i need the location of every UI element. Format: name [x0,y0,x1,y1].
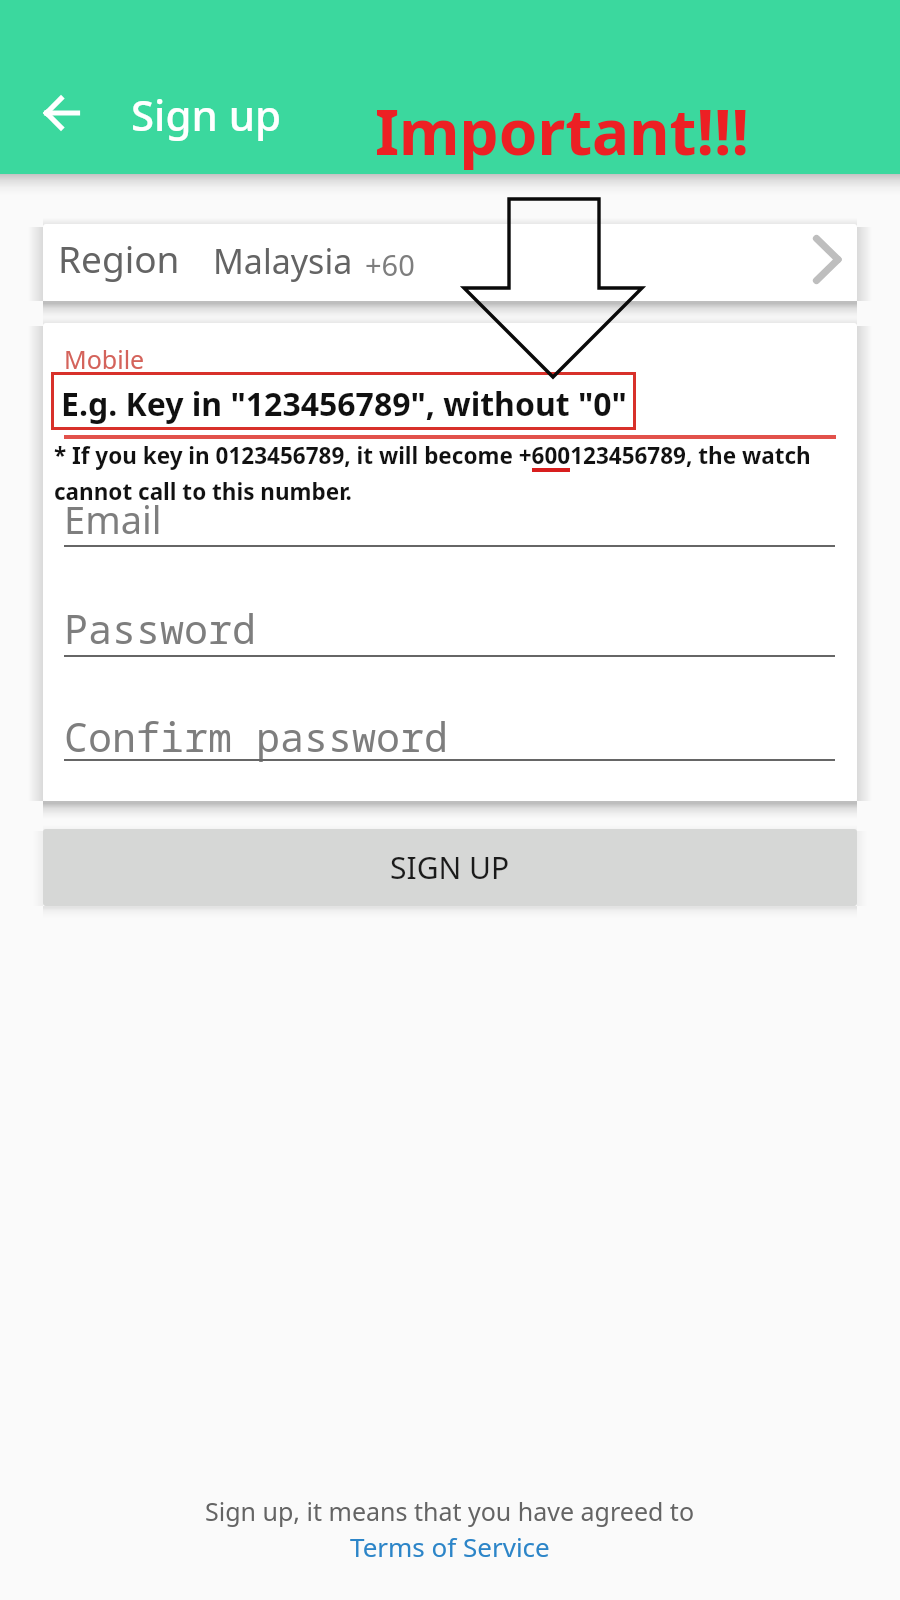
staticText: Sign up [131,86,282,143]
staticText: Sign up, it means that you have agreed t… [205,1494,695,1528]
staticText: Confirm password [64,709,448,763]
button[interactable]: Email [64,485,835,547]
staticText: +60 [365,245,415,284]
staticText: Email [64,493,162,545]
staticText: Important!!! [375,89,749,173]
button[interactable]: Back [18,72,102,156]
staticText: Malaysia [213,238,353,284]
staticText: SIGN UP [390,847,510,888]
button[interactable]: Password [64,593,835,657]
staticText: Terms of Service [350,1529,550,1564]
staticText: E.g. Key in "123456789", without "0" [61,382,627,426]
button[interactable]: SIGN UP [43,829,857,906]
button[interactable]: Confirm password [64,701,835,761]
staticText: * If you key in 0123456789, it will beco… [54,440,854,507]
staticText: Region [58,233,180,283]
button[interactable]: Region [43,224,857,301]
staticText: Password [64,601,256,655]
button[interactable]: Terms of Service [350,1529,550,1564]
staticText: Mobile [64,342,145,376]
